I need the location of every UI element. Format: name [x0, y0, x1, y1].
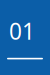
button[interactable]: Page 01 — [0, 0, 50, 75]
staticText: 01 — [9, 16, 35, 46]
